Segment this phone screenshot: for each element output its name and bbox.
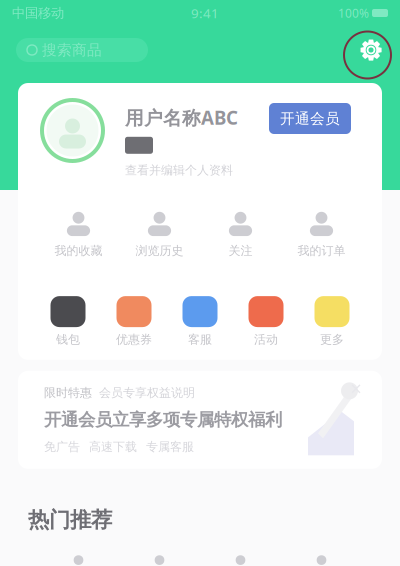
button[interactable]: 开通会员	[269, 103, 351, 134]
button[interactable]: 我的订单	[281, 211, 362, 258]
staticText: 用户名称ABC	[125, 105, 238, 130]
button[interactable]: 更多	[299, 296, 365, 347]
staticText: 浏览历史	[135, 243, 183, 258]
staticText: 100%	[338, 5, 369, 21]
staticText: 专属客服	[146, 439, 194, 454]
staticText: 客服	[188, 332, 212, 347]
button[interactable]: Settings	[352, 31, 390, 69]
button[interactable]: Close	[344, 377, 368, 401]
staticText: 关注	[228, 243, 252, 258]
staticText: 9:41	[191, 4, 219, 22]
button[interactable]	[38, 555, 119, 566]
button[interactable]	[119, 555, 200, 566]
button[interactable]: 客服	[167, 296, 233, 347]
button[interactable]: 钱包	[35, 296, 101, 347]
staticText: 我的收藏	[54, 243, 102, 258]
staticText: 热门推荐	[28, 507, 112, 533]
staticText: 中国移动	[12, 5, 72, 21]
button[interactable]: 关注	[200, 211, 281, 258]
button[interactable]: 优惠券	[101, 296, 167, 347]
staticText: 开通会员	[280, 109, 340, 127]
staticText: 会员专享权益说明	[99, 385, 195, 400]
staticText: 高速下载	[89, 439, 137, 454]
staticText: 开通会员立享多项专属特权福利	[44, 409, 282, 430]
staticText: 我的订单	[297, 243, 345, 258]
button[interactable]	[200, 555, 281, 566]
staticText: 钱包	[56, 332, 80, 347]
staticText: 优惠券	[116, 332, 152, 347]
staticText: 查看并编辑个人资料	[125, 163, 233, 177]
button[interactable]	[281, 555, 362, 566]
button[interactable]: 我的收藏	[38, 211, 119, 258]
staticText: 活动	[254, 332, 278, 347]
button[interactable]: 浏览历史	[119, 211, 200, 258]
button[interactable]: 活动	[233, 296, 299, 347]
staticText: 限时特惠	[44, 385, 92, 400]
staticText: 免广告	[44, 439, 80, 454]
staticText: 搜索商品	[42, 41, 102, 59]
staticText: 更多	[320, 332, 344, 347]
